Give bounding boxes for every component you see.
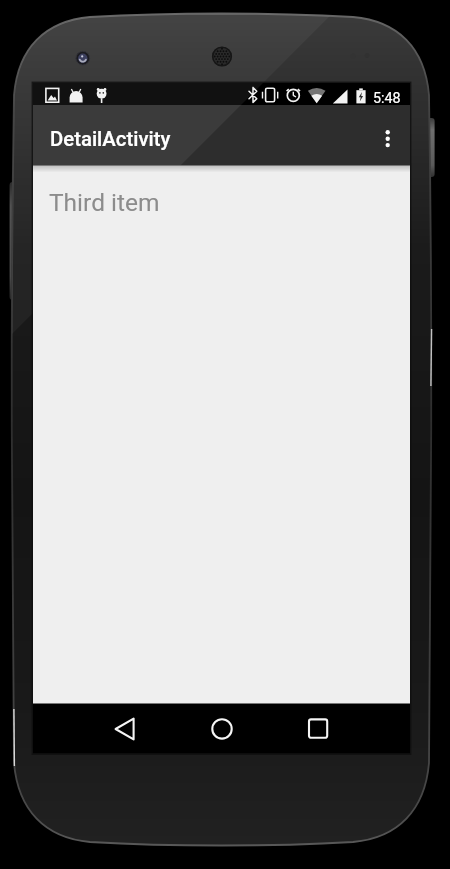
button[interactable] <box>293 704 343 753</box>
staticText: Third item <box>49 188 160 217</box>
staticText: 5:48 <box>373 90 401 107</box>
button[interactable] <box>375 111 401 165</box>
staticText: DetailActivity <box>50 127 171 151</box>
button[interactable] <box>197 704 247 753</box>
button[interactable] <box>100 704 150 753</box>
